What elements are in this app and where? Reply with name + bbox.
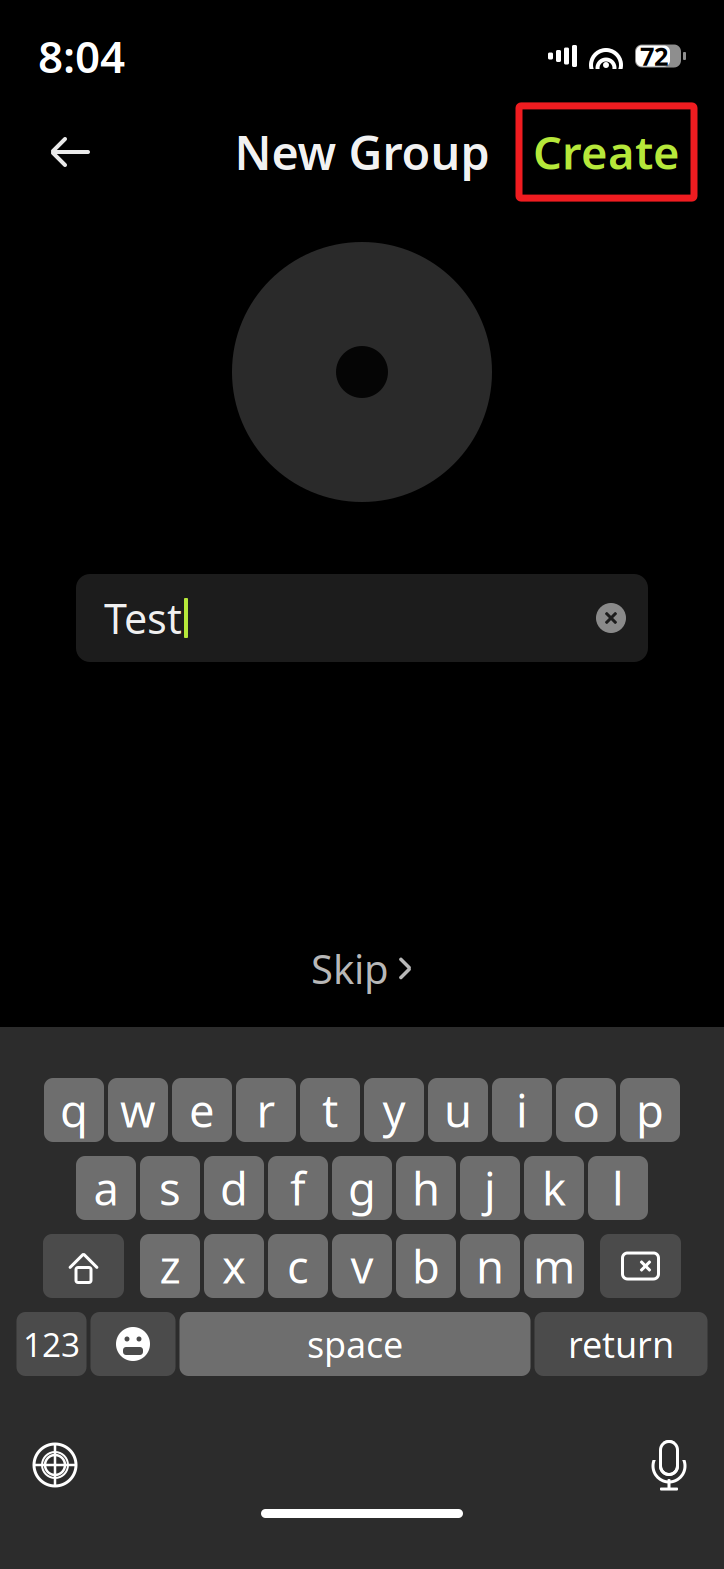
button[interactable]: p bbox=[620, 1078, 680, 1142]
staticText: c bbox=[287, 1236, 309, 1296]
button[interactable]: Next keyboard bbox=[22, 1432, 88, 1498]
staticText: l bbox=[612, 1158, 624, 1218]
staticText: return bbox=[568, 1320, 674, 1368]
staticText: a bbox=[93, 1158, 118, 1218]
button[interactable]: t bbox=[300, 1078, 360, 1142]
staticText: t bbox=[322, 1080, 338, 1140]
button[interactable]: h bbox=[396, 1156, 456, 1220]
button[interactable]: Delete bbox=[600, 1234, 681, 1298]
staticText: o bbox=[572, 1080, 599, 1140]
staticText: p bbox=[636, 1080, 664, 1140]
button[interactable]: Clear text bbox=[588, 595, 634, 641]
staticText: New Group bbox=[234, 121, 489, 183]
button[interactable]: a bbox=[76, 1156, 136, 1220]
staticText: k bbox=[542, 1158, 566, 1218]
staticText: b bbox=[412, 1236, 440, 1296]
button[interactable]: Back bbox=[34, 119, 108, 185]
button[interactable]: Skip bbox=[293, 932, 431, 1005]
staticText: i bbox=[516, 1080, 528, 1140]
button[interactable]: f bbox=[268, 1156, 328, 1220]
staticText: x bbox=[222, 1236, 246, 1296]
button[interactable]: o bbox=[556, 1078, 616, 1142]
staticText: Skip bbox=[311, 942, 389, 995]
staticText: 8:04 bbox=[38, 27, 125, 85]
button[interactable]: Emoji bbox=[90, 1312, 175, 1376]
button[interactable]: i bbox=[492, 1078, 552, 1142]
staticText: Create bbox=[533, 122, 680, 182]
staticText: j bbox=[484, 1158, 496, 1218]
staticText: space bbox=[307, 1320, 403, 1368]
button[interactable]: l bbox=[588, 1156, 648, 1220]
staticText: s bbox=[159, 1158, 181, 1218]
button[interactable]: Add group photo bbox=[232, 242, 492, 502]
button[interactable]: r bbox=[236, 1078, 296, 1142]
button[interactable]: Create bbox=[523, 110, 690, 194]
button[interactable]: m bbox=[524, 1234, 584, 1298]
button[interactable]: b bbox=[396, 1234, 456, 1298]
staticText: 72 bbox=[640, 39, 668, 73]
staticText: 123 bbox=[23, 1322, 80, 1366]
staticText: z bbox=[159, 1236, 180, 1296]
button[interactable]: c bbox=[268, 1234, 328, 1298]
staticText: q bbox=[60, 1080, 88, 1140]
button[interactable]: g bbox=[332, 1156, 392, 1220]
button[interactable]: return bbox=[534, 1312, 707, 1376]
staticText: v bbox=[350, 1236, 373, 1296]
button[interactable]: n bbox=[460, 1234, 520, 1298]
staticText: d bbox=[220, 1158, 248, 1218]
staticText: f bbox=[290, 1158, 306, 1218]
button[interactable]: 123 bbox=[16, 1312, 86, 1376]
button[interactable]: e bbox=[172, 1078, 232, 1142]
button[interactable]: k bbox=[524, 1156, 584, 1220]
button[interactable]: j bbox=[460, 1156, 520, 1220]
button[interactable]: y bbox=[364, 1078, 424, 1142]
button[interactable]: u bbox=[428, 1078, 488, 1142]
staticText: g bbox=[348, 1158, 376, 1218]
button[interactable]: w bbox=[108, 1078, 168, 1142]
staticText: Test bbox=[104, 591, 182, 645]
staticText: h bbox=[412, 1158, 440, 1218]
button[interactable]: v bbox=[332, 1234, 392, 1298]
button[interactable]: q bbox=[44, 1078, 104, 1142]
button[interactable]: space bbox=[179, 1312, 530, 1376]
staticText: n bbox=[476, 1236, 504, 1296]
staticText: e bbox=[189, 1080, 215, 1140]
button[interactable]: Dictate bbox=[636, 1432, 702, 1498]
button[interactable]: s bbox=[140, 1156, 200, 1220]
button[interactable]: x bbox=[204, 1234, 264, 1298]
staticText: w bbox=[120, 1080, 156, 1140]
button[interactable]: Shift bbox=[43, 1234, 124, 1298]
button[interactable]: d bbox=[204, 1156, 264, 1220]
staticText: y bbox=[382, 1080, 405, 1140]
staticText: m bbox=[533, 1236, 575, 1296]
staticText: r bbox=[256, 1080, 275, 1140]
staticText: u bbox=[444, 1080, 472, 1140]
button[interactable]: z bbox=[140, 1234, 200, 1298]
